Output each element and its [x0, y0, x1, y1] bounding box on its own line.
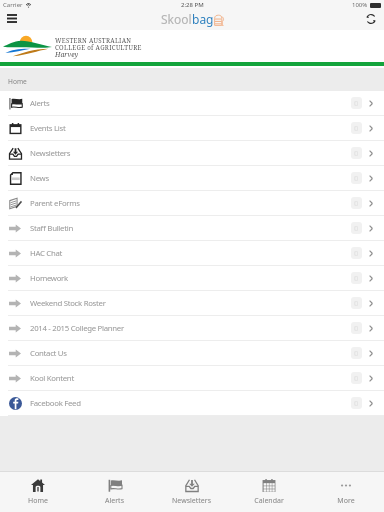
- staticText: Homework: [30, 273, 68, 284]
- staticText: 0: [354, 248, 359, 258]
- staticText: 0: [354, 298, 359, 308]
- staticText: WESTERN AUSTRALIAN: [55, 36, 132, 44]
- staticText: bag: [192, 11, 214, 27]
- staticText: 0: [354, 223, 359, 233]
- button[interactable]: News: [0, 166, 384, 191]
- staticText: 0: [354, 348, 359, 358]
- staticText: 0: [354, 373, 359, 383]
- staticText: Facebook Feed: [30, 398, 81, 409]
- button[interactable]: More: [307, 472, 384, 512]
- button[interactable]: Weekend Stock Roster: [0, 291, 384, 316]
- staticText: COLLEGE of AGRICULTURE: [55, 43, 142, 51]
- button[interactable]: Newsletters: [0, 141, 384, 166]
- staticText: Newsletters: [30, 148, 71, 159]
- button[interactable]: Alerts: [0, 91, 384, 116]
- button[interactable]: Homework: [0, 266, 384, 291]
- staticText: Home: [28, 496, 48, 506]
- button[interactable]: Refresh: [363, 9, 384, 30]
- staticText: 2:28 PM: [181, 1, 204, 9]
- staticText: More: [337, 496, 355, 506]
- staticText: Kool Kontent: [30, 373, 74, 384]
- button[interactable]: Calendar: [230, 472, 307, 512]
- staticText: Parent eForms: [30, 198, 80, 209]
- staticText: Alerts: [30, 98, 50, 109]
- button[interactable]: Contact Us: [0, 341, 384, 366]
- button[interactable]: Staff Bulletin: [0, 216, 384, 241]
- staticText: Carrier: [3, 1, 23, 9]
- staticText: 0: [354, 173, 359, 183]
- staticText: 0: [354, 148, 359, 158]
- staticText: 0: [354, 198, 359, 208]
- staticText: Harvey: [55, 50, 79, 59]
- staticText: Staff Bulletin: [30, 223, 73, 234]
- staticText: 0: [354, 273, 359, 283]
- staticText: 100%: [352, 1, 368, 9]
- staticText: 0: [354, 323, 359, 333]
- button[interactable]: Home: [0, 472, 76, 512]
- button[interactable]: 2014 - 2015 College Planner: [0, 316, 384, 341]
- staticText: Home: [8, 77, 27, 86]
- staticText: Weekend Stock Roster: [30, 298, 106, 309]
- staticText: Alerts: [105, 496, 124, 506]
- button[interactable]: Menu: [0, 9, 25, 30]
- button[interactable]: Alerts: [76, 472, 153, 512]
- staticText: 0: [354, 123, 359, 133]
- staticText: Skool: [161, 11, 192, 27]
- staticText: Newsletters: [172, 496, 211, 506]
- button[interactable]: Events List: [0, 116, 384, 141]
- staticText: Calendar: [254, 496, 284, 506]
- button[interactable]: HAC Chat: [0, 241, 384, 266]
- staticText: Events List: [30, 123, 66, 134]
- staticText: 0: [354, 398, 359, 408]
- staticText: HAC Chat: [30, 248, 63, 259]
- button[interactable]: Facebook Feed: [0, 391, 384, 416]
- staticText: News: [30, 173, 49, 184]
- staticText: 2014 - 2015 College Planner: [30, 323, 124, 334]
- staticText: 0: [354, 98, 359, 108]
- button[interactable]: Parent eForms: [0, 191, 384, 216]
- button[interactable]: Kool Kontent: [0, 366, 384, 391]
- button[interactable]: Newsletters: [153, 472, 230, 512]
- staticText: Contact Us: [30, 348, 67, 359]
